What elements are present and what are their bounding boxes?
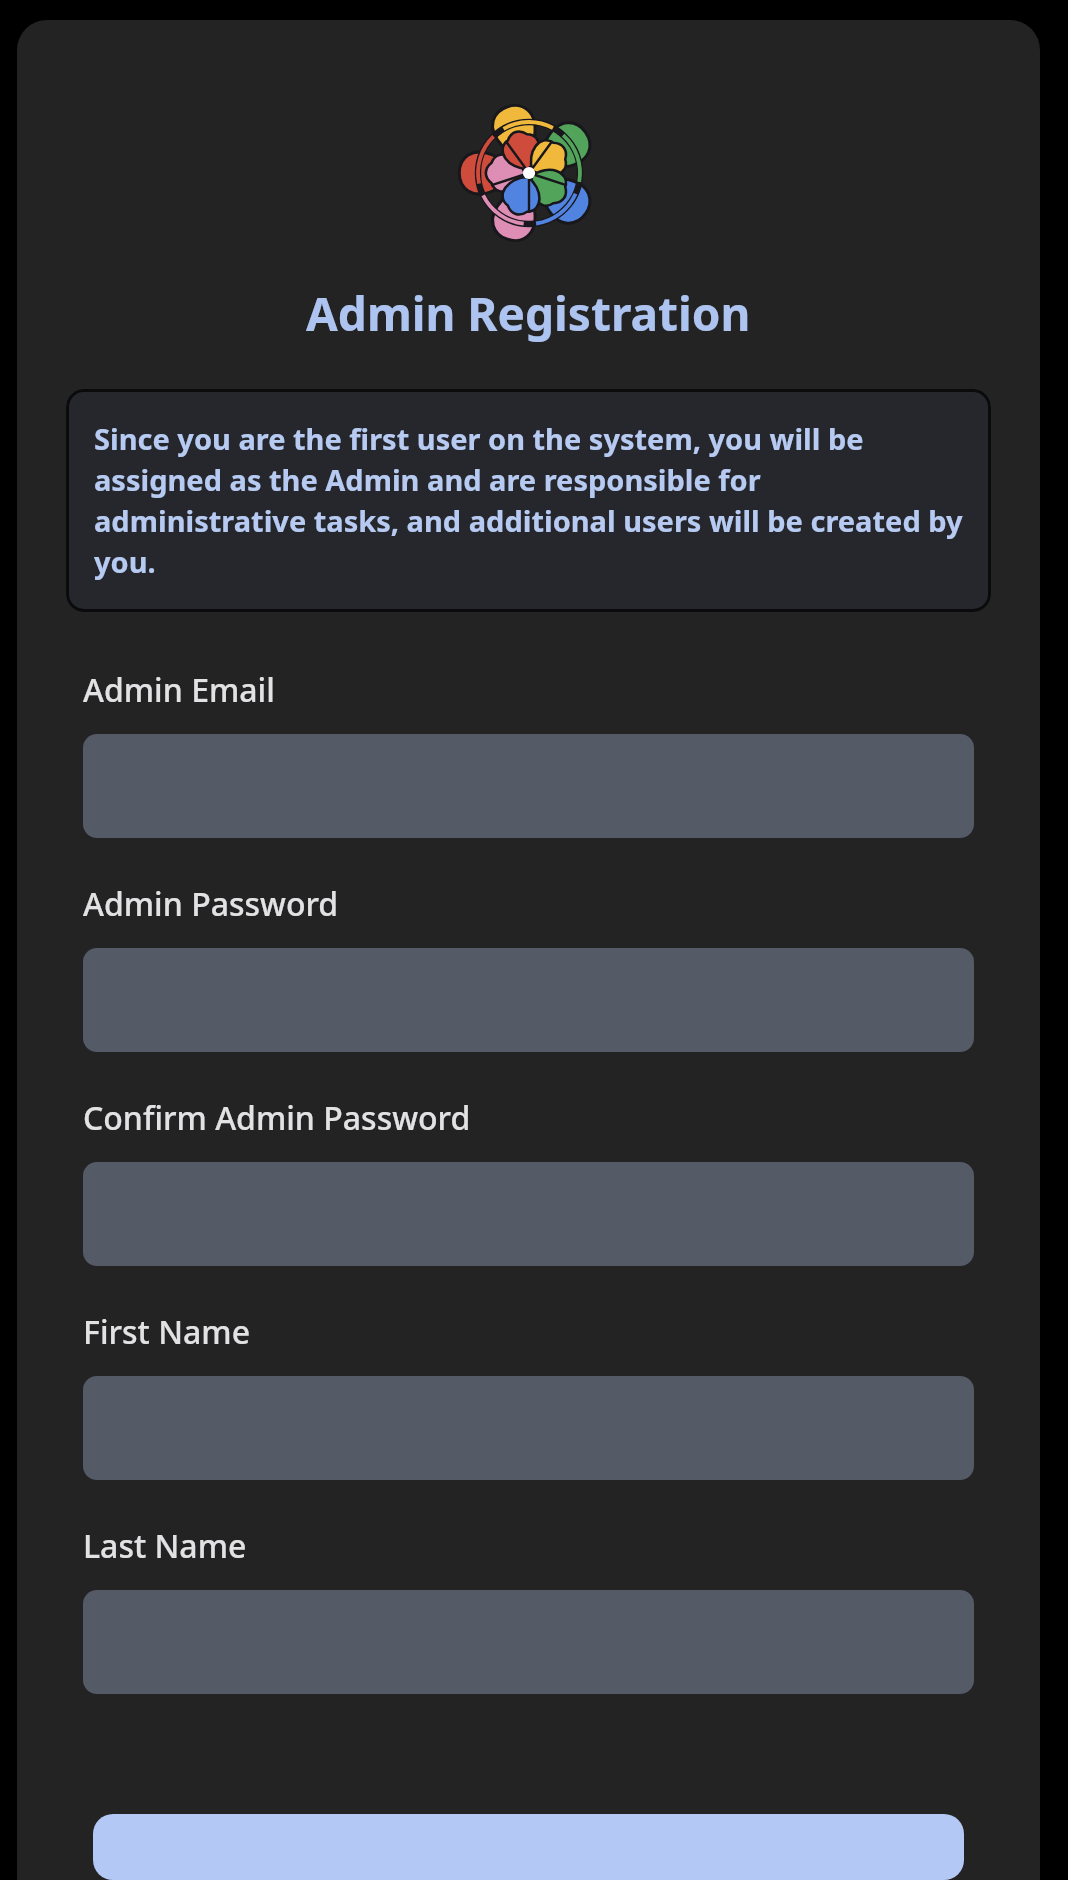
staticText: Admin Email	[83, 668, 275, 712]
staticText: First Name	[83, 1310, 251, 1354]
other: App logo	[444, 88, 614, 258]
staticText: Admin Registration	[306, 282, 751, 345]
staticText: Confirm Admin Password	[83, 1096, 471, 1140]
staticText: Since you are the first user on the syst…	[94, 419, 963, 582]
staticText: Admin Password	[83, 882, 339, 926]
button[interactable]	[93, 1814, 964, 1880]
staticText: Last Name	[83, 1524, 247, 1568]
